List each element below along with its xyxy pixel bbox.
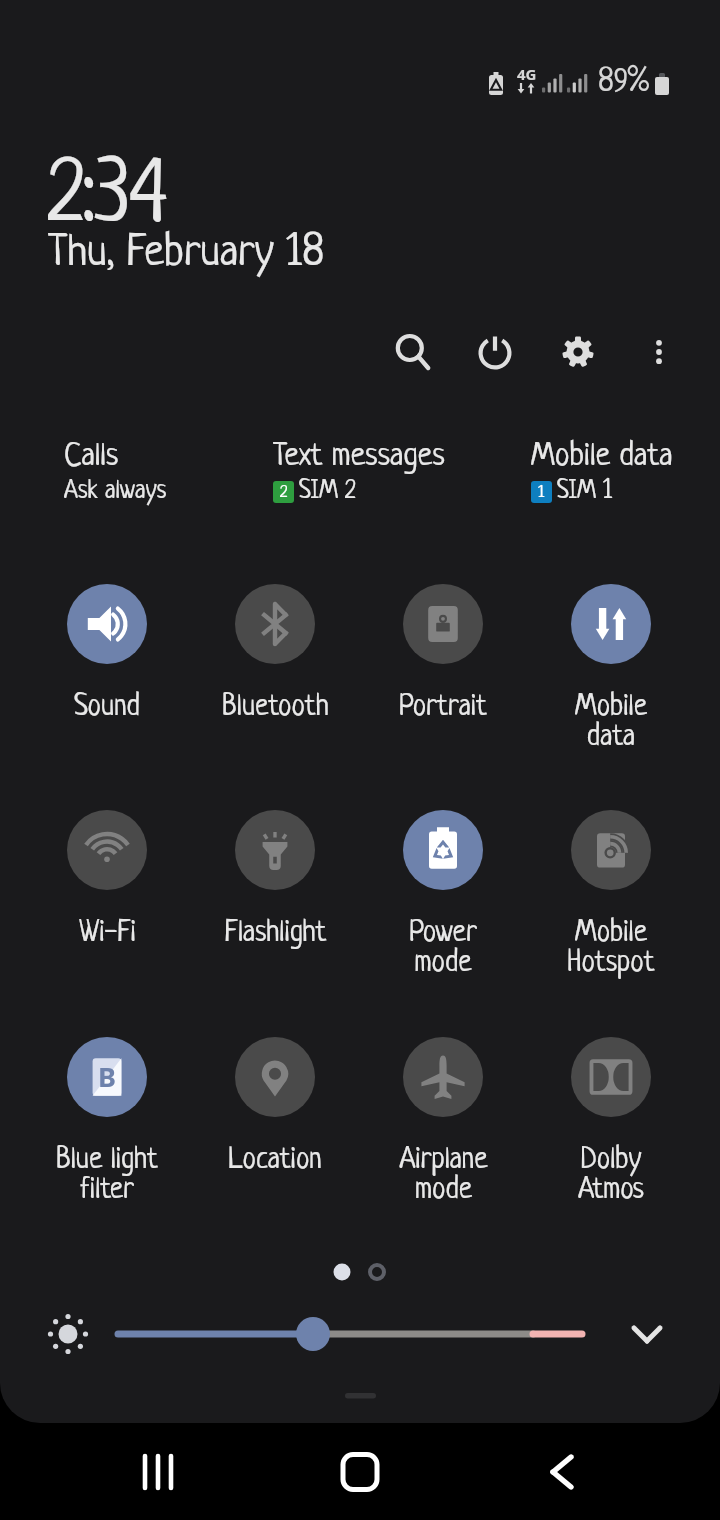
staticText: B (98, 1058, 116, 1095)
staticText: 2:34 (48, 152, 169, 245)
button[interactable]: Bluetooth (191, 584, 359, 724)
button[interactable]: Home (259, 1423, 461, 1520)
button[interactable]: Portrait (359, 584, 527, 724)
button[interactable]: Location (191, 1037, 359, 1177)
button[interactable]: Search (372, 311, 454, 393)
button[interactable]: Recents (57, 1423, 259, 1520)
button[interactable]: Airplane mode (359, 1037, 527, 1206)
staticText: Ask always (64, 478, 167, 505)
staticText: Mobile data (575, 692, 647, 753)
staticText: Mobile Hotspot (567, 918, 655, 979)
staticText: 89% (598, 66, 649, 100)
staticText: Text messages (273, 440, 445, 475)
button[interactable]: Mobile Hotspot (527, 810, 695, 979)
button[interactable]: Power mode (359, 810, 527, 979)
staticText: Bluetooth (222, 692, 329, 724)
staticText: Location (228, 1145, 322, 1177)
button[interactable]: B (23, 1037, 191, 1206)
staticText: 4G (517, 64, 537, 84)
staticText: SIM 1 (557, 478, 613, 505)
button[interactable]: Mobile data (527, 584, 695, 753)
staticText: Wi-Fi (79, 918, 136, 950)
staticText: Airplane mode (399, 1145, 488, 1206)
button[interactable]: Settings (537, 311, 619, 393)
button[interactable]: More options (618, 311, 700, 393)
button[interactable]: Sound (23, 584, 191, 724)
button[interactable]: Wi-Fi (23, 810, 191, 950)
button[interactable]: Dolby Atmos (527, 1037, 695, 1206)
staticText: Flashlight (224, 918, 327, 950)
staticText: 2 (280, 483, 288, 502)
button[interactable]: Back (461, 1423, 663, 1520)
button[interactable]: Expand (618, 1305, 676, 1363)
staticText: Power mode (409, 918, 477, 979)
button[interactable]: Flashlight (191, 810, 359, 950)
staticText: Portrait (399, 692, 487, 724)
staticText: Mobile data (531, 440, 673, 475)
staticText: Thu, February 18 (48, 230, 325, 277)
staticText: Dolby Atmos (578, 1145, 644, 1206)
staticText: SIM 2 (299, 478, 356, 505)
staticText: Blue light filter (56, 1145, 158, 1206)
staticText: 1 (538, 483, 545, 502)
staticText: Sound (74, 692, 140, 724)
button[interactable]: Power off (454, 311, 536, 393)
staticText: Calls (64, 440, 119, 475)
